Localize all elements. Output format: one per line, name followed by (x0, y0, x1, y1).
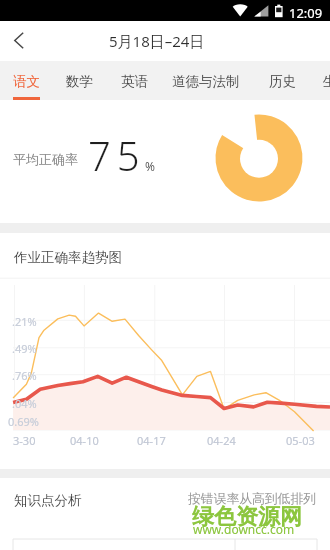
staticText: www.downcc.com (193, 521, 295, 537)
staticText: .76% (12, 368, 37, 383)
button[interactable]: 数学 (52, 61, 107, 100)
staticText: 语文 (13, 73, 40, 90)
staticText: .21% (12, 314, 37, 329)
staticText: 04-24 (207, 433, 236, 448)
staticText: 作业正确率趋势图 (14, 249, 122, 266)
button[interactable]: 生 (309, 61, 330, 100)
button[interactable]: 语文 (0, 61, 54, 100)
staticText: 5月18日–24日 (109, 31, 205, 51)
staticText: 知识点分析 (14, 492, 82, 509)
staticText: 12:09 (289, 4, 323, 22)
staticText: 04-10 (70, 433, 99, 448)
staticText: 历史 (269, 73, 296, 90)
staticText: 3-30 (13, 433, 36, 448)
staticText: .04% (12, 396, 37, 411)
staticText: 04-17 (137, 433, 166, 448)
staticText: 平均正确率 (13, 151, 78, 167)
staticText: 按错误率从高到低排列 (188, 491, 316, 507)
staticText: .49% (12, 341, 37, 356)
staticText: 数学 (66, 73, 93, 90)
staticText: 75 (88, 128, 146, 182)
staticText: 0.69% (8, 414, 39, 429)
staticText: 英语 (121, 73, 148, 90)
button[interactable]: 道德与法制 (158, 61, 253, 100)
button[interactable]: 历史 (255, 61, 310, 100)
staticText: % (145, 158, 155, 174)
staticText: 绿色资源网 (192, 503, 302, 531)
staticText: 道德与法制 (172, 73, 240, 90)
button[interactable]: Back (0, 22, 37, 59)
button[interactable]: 英语 (107, 61, 162, 100)
staticText: 生 (323, 73, 330, 90)
staticText: 05-03 (286, 433, 315, 448)
